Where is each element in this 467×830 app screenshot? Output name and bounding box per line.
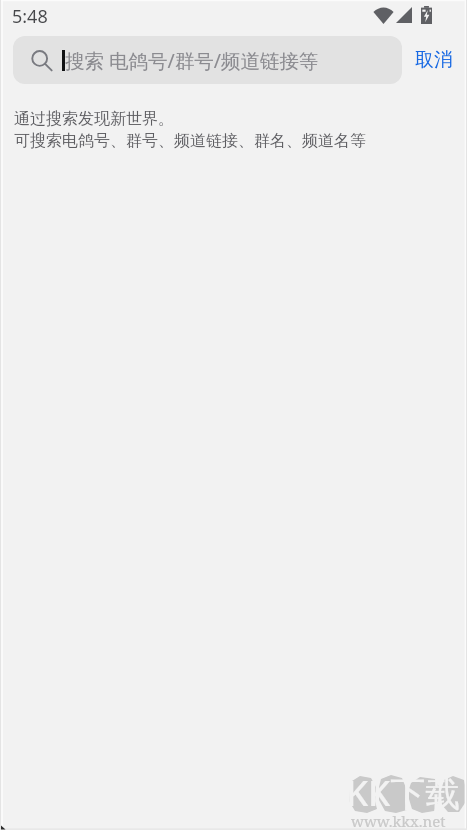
- staticText: 5:48: [12, 4, 48, 29]
- staticText: 通过搜索发现新世界。: [14, 109, 174, 129]
- button[interactable]: 取消: [405, 36, 465, 84]
- staticText: 可搜索电鸽号、群号、频道链接、群名、频道名等: [14, 131, 366, 151]
- staticText: 搜索 电鸽号/群号/频道链接等: [65, 47, 319, 74]
- staticText: www.kkx.net: [351, 811, 446, 830]
- button[interactable]: 搜索框: [13, 36, 402, 84]
- staticText: KK下载: [346, 769, 461, 817]
- staticText: 取消: [415, 48, 453, 72]
